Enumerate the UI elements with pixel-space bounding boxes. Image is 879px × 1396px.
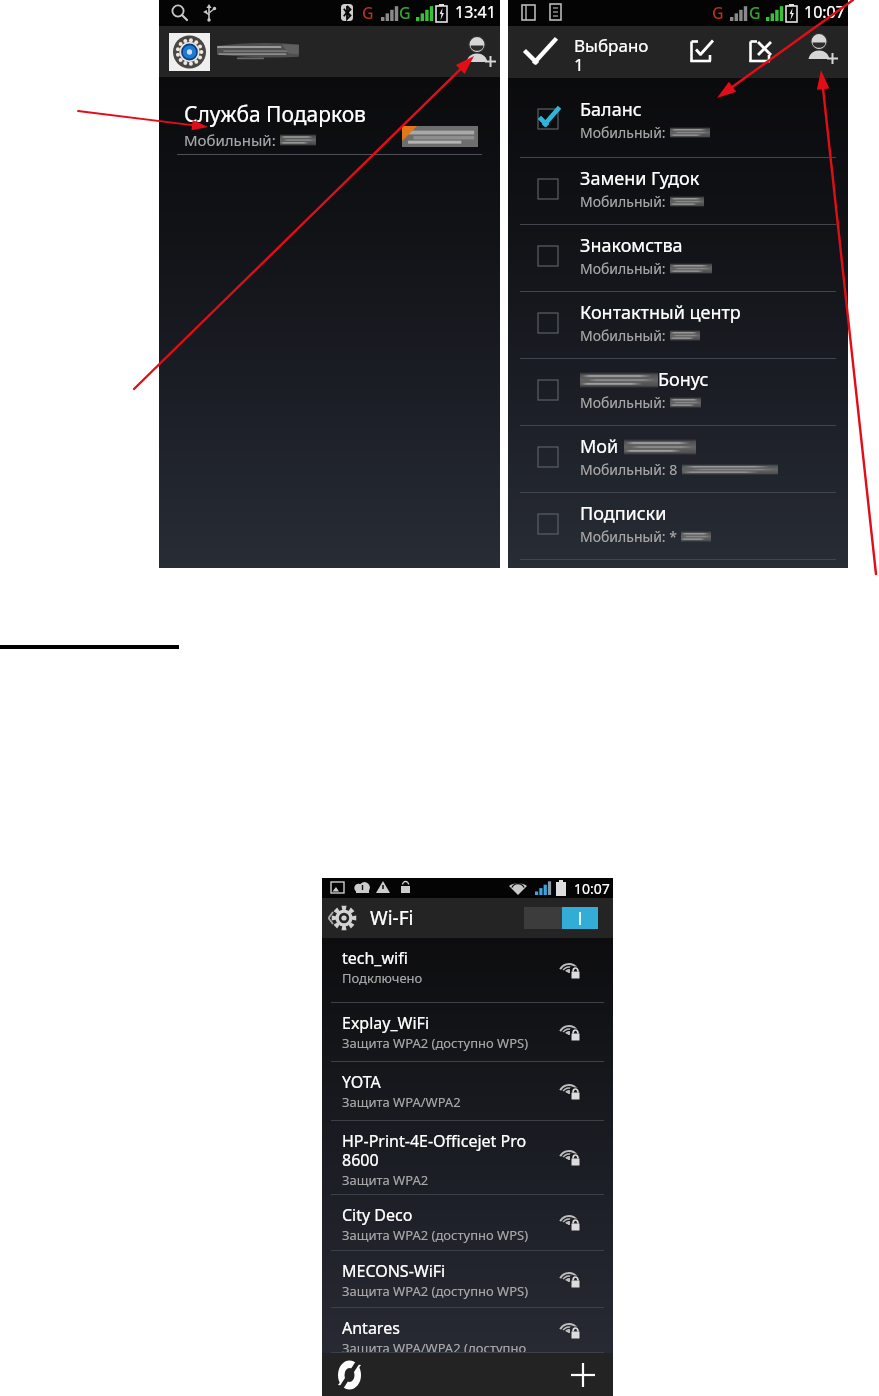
staticText: Wi-Fi — [370, 905, 414, 931]
button[interactable]: Explay_WiFi — [322, 1003, 613, 1062]
button[interactable]: Wi-Fi toggle — [524, 907, 598, 929]
staticText: Antares — [342, 1317, 400, 1339]
staticText: Служба Подарков — [184, 100, 366, 129]
staticText: Защита WPA2 (доступно WPS) — [342, 1034, 529, 1052]
staticText: City Deco — [342, 1204, 413, 1226]
staticText: Explay_WiFi — [342, 1012, 430, 1034]
staticText: Подключено — [342, 969, 423, 987]
staticText: Защита WPA2 (доступно WPS) — [342, 1226, 529, 1244]
button[interactable]: YOTA — [322, 1062, 613, 1121]
button[interactable]: Add network — [563, 1355, 603, 1395]
staticText: Бонус — [658, 367, 709, 392]
staticText: Мобильный: * — [580, 527, 677, 546]
staticText: Защита WPA2 (доступно WPS) — [342, 1282, 529, 1300]
staticText: 13:41 — [455, 1, 496, 23]
button[interactable]: Контактный центр — [508, 292, 848, 359]
button[interactable]: Antares — [322, 1308, 613, 1353]
button[interactable]: Select all — [679, 26, 725, 78]
button[interactable]: Подписки — [508, 493, 848, 560]
staticText: MECONS-WiFi — [342, 1260, 446, 1282]
button[interactable]: tech_wifi — [322, 938, 613, 1003]
button[interactable]: WPS — [330, 1355, 370, 1395]
button[interactable]: MECONS-WiFi — [322, 1251, 613, 1308]
staticText: YOTA — [342, 1071, 381, 1093]
staticText: Защита WPA/WPA2 (доступно — [342, 1339, 527, 1353]
button[interactable]: Служба Подарков — [159, 77, 500, 155]
staticText: G — [362, 2, 374, 24]
button[interactable]: Знакомства — [508, 225, 848, 292]
staticText: Мобильный: — [580, 192, 666, 211]
staticText: tech_wifi — [342, 947, 408, 969]
button[interactable]: City Deco — [322, 1195, 613, 1251]
staticText: Мобильный: — [580, 326, 666, 345]
button[interactable]: Замени Гудок — [508, 158, 848, 225]
staticText: G — [712, 2, 724, 24]
button[interactable]: Back — [325, 899, 367, 937]
button[interactable]: App icon — [169, 33, 210, 71]
staticText: Мобильный: — [580, 123, 666, 142]
button[interactable]: Deselect all — [738, 26, 784, 78]
staticText: HP-Print-4E-Officejet Pro 8600 — [342, 1130, 551, 1171]
staticText: Мобильный: 8 — [580, 460, 678, 479]
staticText: Замени Гудок — [580, 166, 700, 191]
staticText: Мобильный: — [580, 393, 666, 412]
button[interactable]: Add contact — [800, 26, 846, 78]
button[interactable]: Мой — [508, 426, 848, 493]
staticText: 10:07 — [804, 1, 845, 23]
staticText: Мобильный: — [580, 259, 666, 278]
staticText: Контактный центр — [580, 300, 741, 325]
button[interactable]: Add contact — [456, 30, 500, 74]
staticText: Баланс — [580, 97, 642, 122]
button[interactable]: Done — [516, 26, 564, 78]
button[interactable]: HP-Print-4E-Officejet Pro 8600 — [322, 1121, 613, 1195]
staticText: Подписки — [580, 501, 667, 526]
staticText: Защита WPA2 — [342, 1171, 429, 1189]
button[interactable]: Бонус — [508, 359, 848, 426]
staticText: Защита WPA/WPA2 — [342, 1093, 461, 1111]
staticText: Выбрано 1 — [574, 34, 649, 76]
button[interactable]: Баланс — [508, 86, 848, 158]
staticText: G — [749, 2, 761, 24]
staticText: Мобильный: — [184, 130, 276, 150]
staticText: Мой — [580, 434, 619, 459]
staticText: 10:07 — [574, 879, 610, 898]
staticText: Знакомства — [580, 233, 683, 258]
staticText: G — [399, 2, 411, 24]
